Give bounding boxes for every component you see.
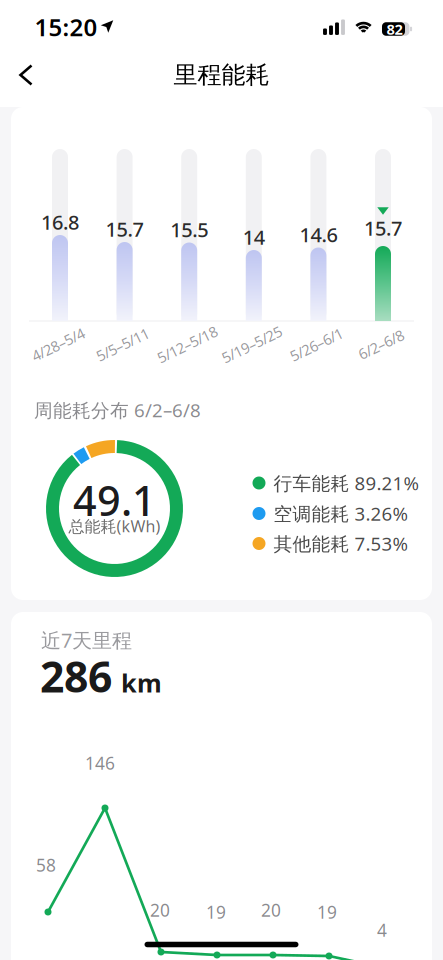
staticText: 19: [206, 900, 226, 923]
staticText: 82: [386, 19, 402, 39]
staticText: 146: [85, 751, 115, 774]
staticText: 空调能耗 3.26%: [273, 501, 408, 526]
staticText: 15.7: [106, 216, 144, 242]
staticText: 近7天里程: [41, 627, 132, 653]
staticText: 16.8: [41, 209, 79, 235]
staticText: 14.6: [299, 221, 337, 248]
staticText: 15.5: [170, 216, 208, 243]
staticText: 19: [317, 900, 337, 923]
staticText: 5/19–5/25: [219, 335, 284, 354]
staticText: 286: [40, 648, 112, 704]
staticText: 5/26–6/1: [288, 335, 345, 354]
staticText: 49.1: [73, 473, 156, 527]
staticText: km: [121, 666, 162, 699]
staticText: 5/12–5/18: [155, 335, 220, 354]
staticText: 5/5–5/11: [94, 335, 151, 354]
staticText: 总能耗(kWh): [68, 515, 160, 537]
staticText: 行车能耗 89.21%: [273, 471, 419, 495]
staticText: 4/28–5/4: [29, 335, 86, 354]
staticText: 20: [261, 898, 281, 921]
staticText: 4: [377, 918, 387, 941]
staticText: 其他能耗 7.53%: [273, 531, 408, 556]
staticText: 20: [150, 898, 170, 921]
button[interactable]: Back: [8, 53, 43, 96]
staticText: 周能耗分布 6/2–6/8: [34, 398, 201, 422]
staticText: 58: [36, 853, 56, 876]
staticText: 14: [243, 224, 265, 250]
staticText: 里程能耗: [173, 60, 269, 90]
staticText: 15:20: [34, 11, 97, 43]
staticText: 15.7: [364, 215, 402, 241]
staticText: 6/2–6/8: [356, 335, 405, 354]
